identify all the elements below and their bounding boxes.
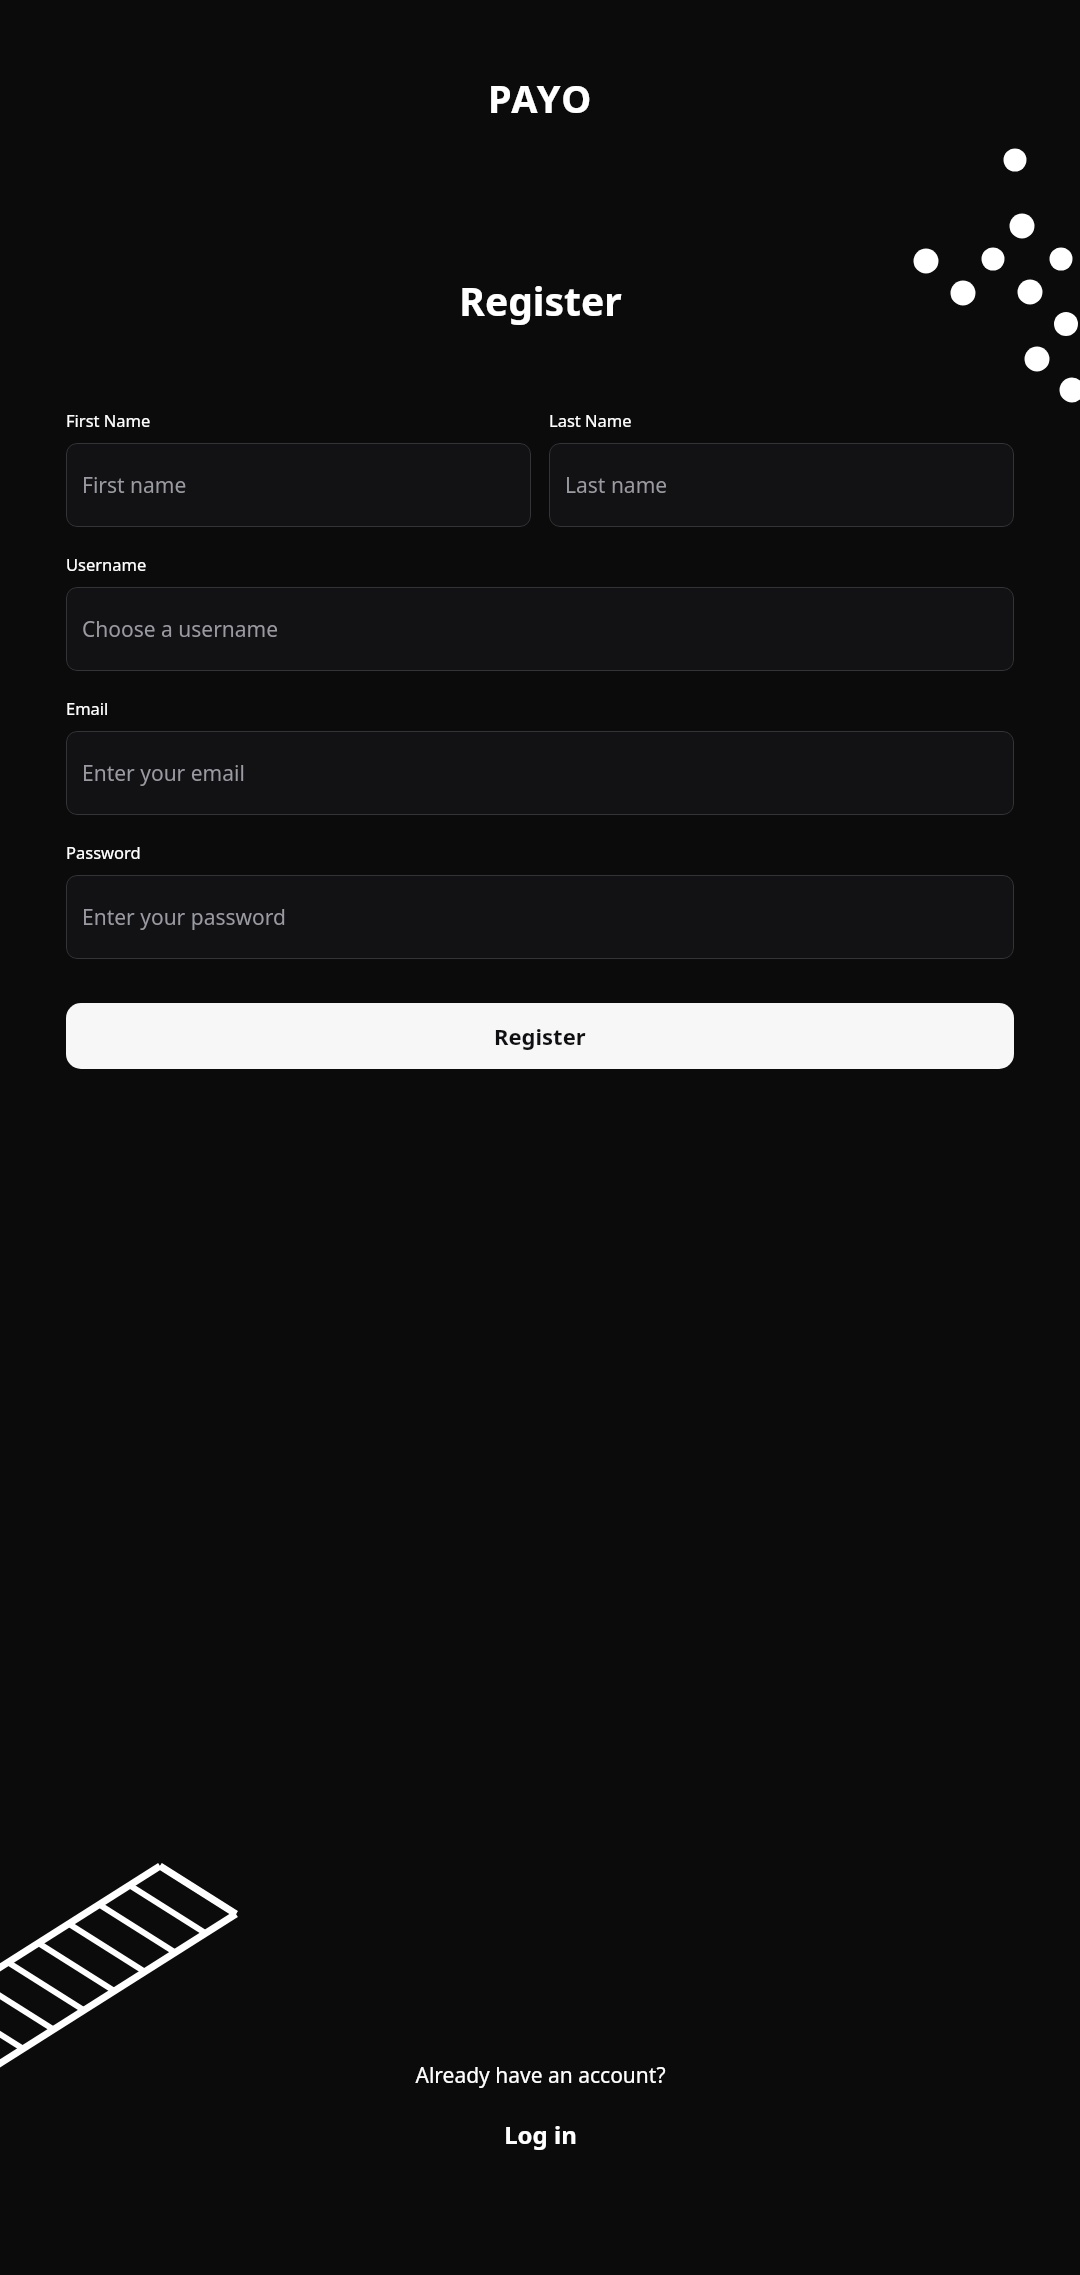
button[interactable]: First name bbox=[66, 443, 531, 527]
button[interactable]: Choose a username bbox=[66, 587, 1014, 671]
staticText: Enter your password bbox=[82, 903, 286, 932]
staticText: PAYO bbox=[488, 72, 593, 124]
staticText: First Name bbox=[66, 409, 151, 431]
staticText: Choose a username bbox=[82, 615, 279, 644]
staticText: Enter your email bbox=[82, 759, 245, 788]
button[interactable]: Log in bbox=[488, 2112, 593, 2157]
staticText: Password bbox=[66, 841, 141, 863]
staticText: Last Name bbox=[549, 409, 632, 431]
button[interactable]: Register bbox=[66, 1003, 1014, 1069]
staticText: First name bbox=[82, 471, 187, 500]
staticText: Register bbox=[494, 1021, 586, 1051]
staticText: Email bbox=[66, 697, 109, 719]
staticText: Last name bbox=[565, 471, 668, 500]
staticText: Register bbox=[459, 274, 622, 327]
button[interactable]: Enter your password bbox=[66, 875, 1014, 959]
staticText: Log in bbox=[504, 2118, 577, 2151]
staticText: Already have an account? bbox=[415, 2061, 666, 2090]
button[interactable]: Last name bbox=[549, 443, 1014, 527]
button[interactable]: Enter your email bbox=[66, 731, 1014, 815]
staticText: Username bbox=[66, 553, 147, 575]
